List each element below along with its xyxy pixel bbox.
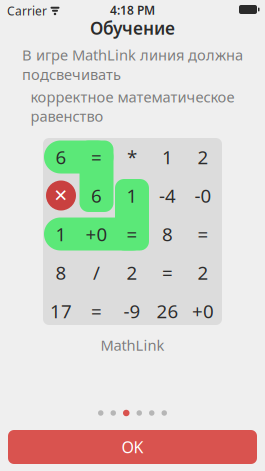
staticText: 6 bbox=[55, 145, 66, 169]
staticText: -0 bbox=[194, 183, 211, 208]
staticText: 6 bbox=[91, 183, 102, 208]
staticText: 17 bbox=[50, 299, 72, 323]
staticText: Обучение bbox=[90, 16, 175, 39]
staticText: 1 bbox=[126, 183, 137, 208]
staticText: 2 bbox=[197, 145, 208, 169]
staticText: корректное математическое равенство bbox=[30, 87, 234, 126]
staticText: 2 bbox=[197, 260, 208, 285]
staticText: = bbox=[126, 222, 137, 246]
staticText: 4:18 PM bbox=[110, 2, 155, 18]
staticText: +0 bbox=[85, 222, 107, 246]
staticText: Carrier bbox=[7, 3, 47, 19]
staticText: = bbox=[162, 260, 173, 285]
staticText: -4 bbox=[159, 183, 176, 208]
staticText: = bbox=[91, 145, 102, 169]
staticText: = bbox=[91, 299, 102, 323]
staticText: 1 bbox=[55, 222, 66, 246]
staticText: ✕ bbox=[53, 186, 68, 205]
button[interactable]: OK bbox=[8, 430, 257, 464]
staticText: В игре MathLink линия должна подсвечиват… bbox=[22, 45, 243, 84]
staticText: 1 bbox=[162, 145, 173, 169]
staticText: MathLink bbox=[100, 335, 164, 355]
staticText: * bbox=[127, 145, 137, 169]
staticText: 26 bbox=[156, 299, 178, 323]
staticText: 8 bbox=[162, 222, 173, 246]
staticText: +0 bbox=[192, 299, 214, 323]
staticText: 2 bbox=[126, 260, 137, 285]
staticText: = bbox=[197, 222, 208, 246]
staticText: 8 bbox=[55, 260, 66, 285]
staticText: / bbox=[93, 260, 100, 285]
staticText: OK bbox=[121, 436, 143, 458]
staticText: -9 bbox=[123, 299, 140, 323]
